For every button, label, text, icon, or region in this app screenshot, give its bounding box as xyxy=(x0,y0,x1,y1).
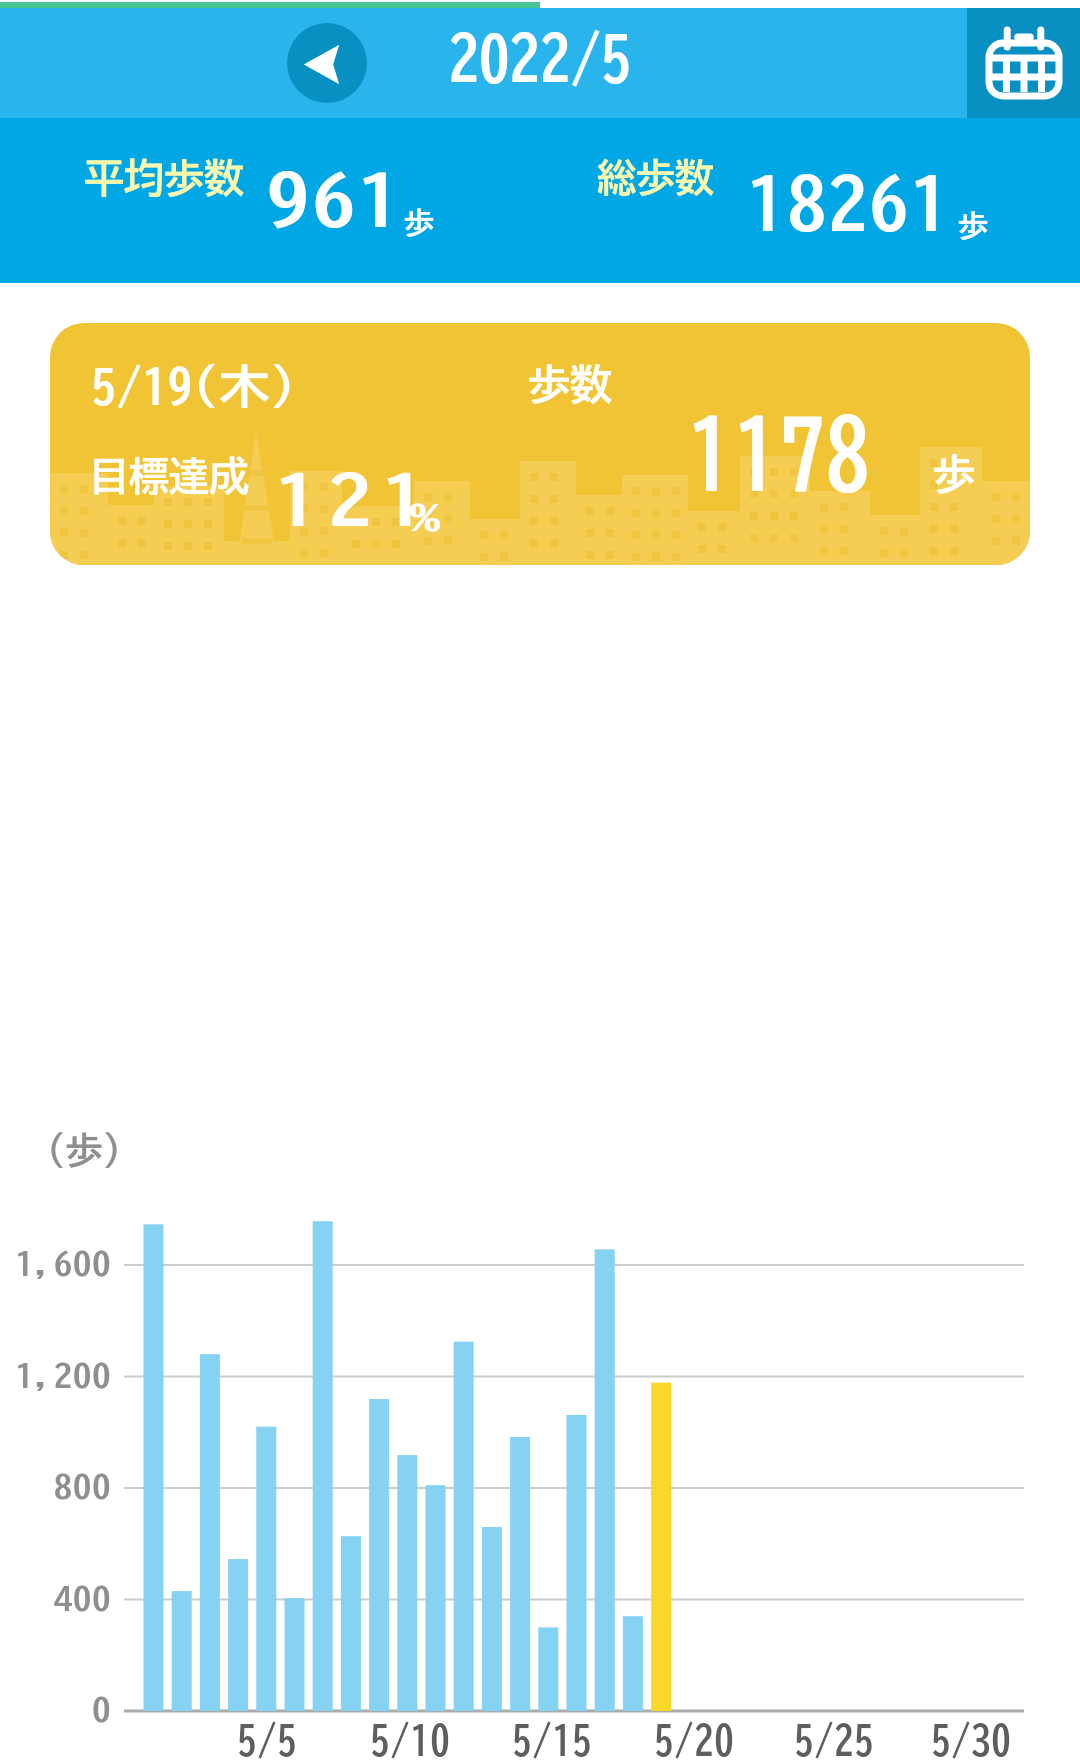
staticText: 5/20 xyxy=(654,1720,734,1760)
button[interactable] xyxy=(287,23,367,103)
staticText: 961 xyxy=(266,167,402,233)
staticText: 800 xyxy=(53,1472,111,1502)
staticText: 18261 xyxy=(746,169,950,237)
staticText: 歩 xyxy=(958,211,988,241)
staticText: 歩数 xyxy=(528,363,612,405)
staticText: % xyxy=(409,502,441,534)
button[interactable] xyxy=(967,8,1080,118)
staticText: 5/15 xyxy=(512,1720,592,1760)
staticText: 1,200 xyxy=(15,1361,111,1391)
staticText: 1,600 xyxy=(15,1249,111,1279)
staticText: 歩 xyxy=(933,453,975,495)
staticText: 総歩数 xyxy=(597,158,714,197)
staticText: 5/5 xyxy=(237,1720,297,1760)
staticText: 歩 xyxy=(404,208,434,238)
staticText: 平均歩数 xyxy=(84,158,244,198)
staticText: 1178 xyxy=(687,408,871,500)
button[interactable]: 5/19(木) xyxy=(50,323,1030,565)
staticText: 5/25 xyxy=(794,1720,874,1760)
staticText: 0 xyxy=(92,1695,111,1725)
staticText: 5/10 xyxy=(370,1720,450,1760)
staticText: 目標達成 xyxy=(89,456,249,496)
staticText: 121 xyxy=(274,467,435,532)
staticText: 2022/5 xyxy=(449,28,631,88)
staticText: (歩) xyxy=(47,1131,121,1168)
staticText: 400 xyxy=(53,1584,111,1614)
staticText: 5/30 xyxy=(931,1720,1011,1760)
staticText: 5/19(木) xyxy=(91,364,295,410)
